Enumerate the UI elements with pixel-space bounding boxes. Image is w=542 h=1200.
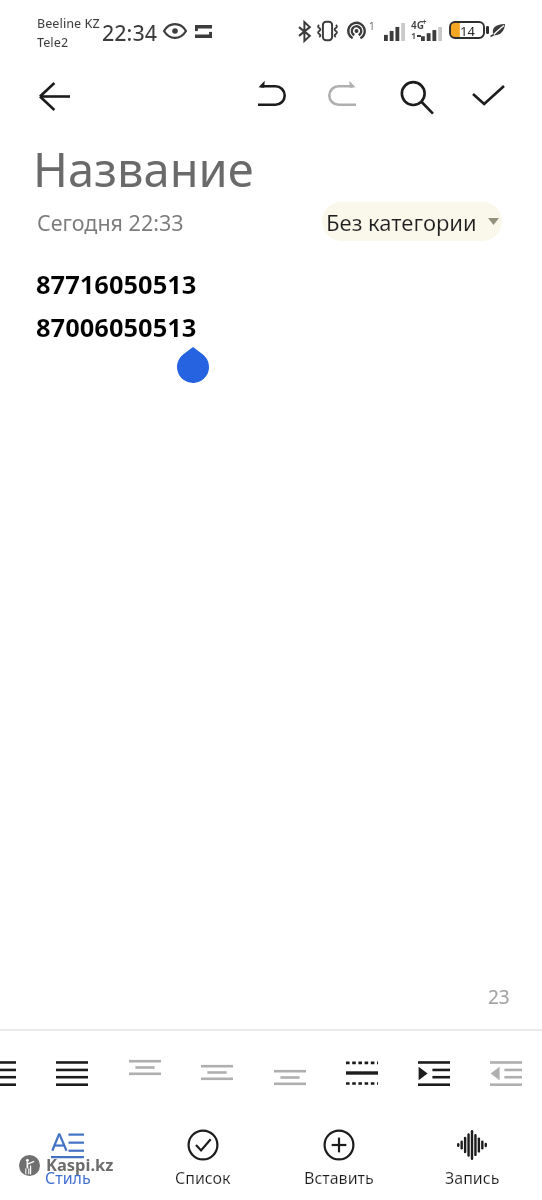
staticText: 4G (411, 18, 424, 32)
staticText: 1 (369, 19, 375, 33)
staticText: 23 (488, 984, 510, 1010)
staticText: 22:34 (102, 18, 158, 47)
staticText: Kaspi.kz (46, 1153, 114, 1175)
staticText: Запись (445, 1167, 500, 1189)
staticText: Список (175, 1167, 231, 1189)
button[interactable]: Increase indent (404, 1031, 464, 1103)
staticText: Сегодня 22:33 (37, 208, 184, 237)
staticText: + (422, 16, 427, 27)
button[interactable]: Без категории (322, 202, 502, 241)
staticText: Без категории (326, 207, 477, 237)
staticText: 87716050513 (36, 267, 197, 302)
button[interactable]: Вставить (277, 1105, 401, 1200)
button[interactable]: Список (141, 1105, 265, 1200)
staticText: Tele2 (37, 34, 69, 51)
staticText: Вставить (304, 1167, 374, 1189)
button[interactable]: 87716050513 (24, 258, 518, 1018)
button[interactable]: Запись (410, 1105, 534, 1200)
staticText: 14 (460, 22, 475, 38)
button[interactable]: Justify (42, 1031, 102, 1103)
button[interactable]: Название (24, 132, 518, 194)
button[interactable]: Align right (260, 1031, 320, 1103)
button[interactable]: Decrease indent (476, 1031, 536, 1103)
button[interactable]: Done (463, 72, 513, 120)
button[interactable]: Align justify (0, 1031, 30, 1103)
staticText: Стиль (45, 1167, 91, 1189)
button[interactable]: Search (388, 72, 438, 120)
button[interactable]: Undo (247, 72, 297, 120)
button[interactable]: Back (24, 72, 86, 120)
staticText: Beeline KZ (37, 15, 100, 32)
button[interactable]: Align center (115, 1031, 175, 1103)
staticText: 87006050513 (36, 310, 197, 345)
button[interactable]: Line spacing (332, 1031, 392, 1103)
button[interactable]: Стиль (6, 1105, 130, 1200)
staticText: 1 (411, 29, 417, 41)
button[interactable]: Align center (187, 1031, 247, 1103)
staticText: Название (33, 137, 254, 199)
button[interactable]: Redo (317, 72, 367, 120)
